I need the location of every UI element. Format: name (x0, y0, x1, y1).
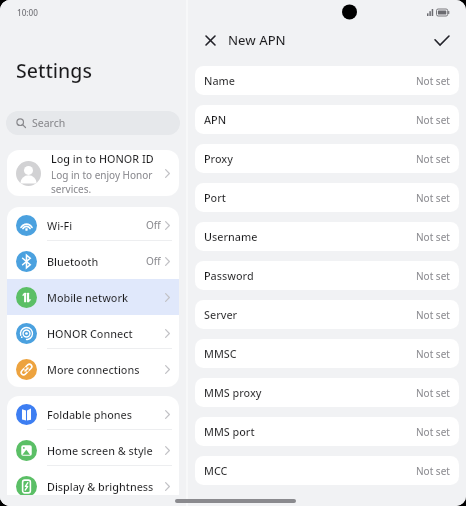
staticText: Wi-Fi (47, 218, 146, 233)
staticText: Password (204, 268, 416, 283)
staticText: Settings (16, 57, 92, 84)
button[interactable]: Username (195, 222, 459, 251)
button[interactable]: Port (195, 183, 459, 212)
button[interactable]: Confirm (431, 29, 453, 51)
staticText: Foldable phones (47, 407, 165, 422)
button[interactable]: Mobile network (7, 279, 179, 315)
staticText: Proxy (204, 151, 416, 166)
staticText: New APN (228, 31, 286, 49)
staticText: Home screen & style (47, 443, 165, 458)
button[interactable]: Server (195, 300, 459, 329)
button[interactable]: Password (195, 261, 459, 290)
staticText: Not set (416, 269, 450, 283)
button[interactable]: Foldable phones (7, 396, 179, 432)
button[interactable]: More connections (7, 351, 179, 387)
button[interactable]: Log in to HONOR ID (7, 150, 179, 196)
staticText: Not set (416, 74, 450, 88)
staticText: 10:00 (17, 7, 38, 18)
button[interactable]: APN (195, 105, 459, 134)
button[interactable]: Bluetooth (7, 243, 179, 279)
staticText: More connections (47, 362, 165, 377)
button[interactable]: Search (6, 111, 180, 135)
staticText: Not set (416, 347, 450, 361)
staticText: MMSC (204, 346, 416, 361)
staticText: Bluetooth (47, 254, 146, 269)
staticText: Not set (416, 386, 450, 400)
staticText: Off (146, 218, 161, 232)
staticText: Server (204, 307, 416, 322)
button[interactable]: Name (195, 66, 459, 95)
staticText: Log in to HONOR ID (51, 151, 154, 166)
staticText: HONOR Connect (47, 326, 165, 341)
staticText: Name (204, 73, 416, 88)
staticText: Not set (416, 425, 450, 439)
button[interactable]: Wi-Fi (7, 207, 179, 243)
staticText: Search (32, 116, 66, 130)
staticText: Username (204, 229, 416, 244)
button[interactable]: MMS proxy (195, 378, 459, 407)
staticText: Not set (416, 152, 450, 166)
staticText: Not set (416, 191, 450, 205)
button[interactable]: MCC (195, 456, 459, 485)
staticText: Not set (416, 230, 450, 244)
button[interactable]: Home screen & style (7, 432, 179, 468)
button[interactable]: Display & brightness (7, 468, 179, 504)
staticText: MMS port (204, 424, 416, 439)
staticText: Not set (416, 113, 450, 127)
staticText: Mobile network (47, 290, 165, 305)
staticText: Not set (416, 464, 450, 478)
staticText: Log in to enjoy Honor services. (51, 168, 161, 196)
button[interactable]: Proxy (195, 144, 459, 173)
staticText: APN (204, 112, 416, 127)
button[interactable]: Close (199, 29, 221, 51)
button[interactable]: HONOR Connect (7, 315, 179, 351)
staticText: Port (204, 190, 416, 205)
staticText: MMS proxy (204, 385, 416, 400)
staticText: Not set (416, 308, 450, 322)
staticText: Display & brightness (47, 479, 165, 494)
staticText: MCC (204, 463, 416, 478)
staticText: Off (146, 254, 161, 268)
button[interactable]: MMSC (195, 339, 459, 368)
button[interactable]: MMS port (195, 417, 459, 446)
